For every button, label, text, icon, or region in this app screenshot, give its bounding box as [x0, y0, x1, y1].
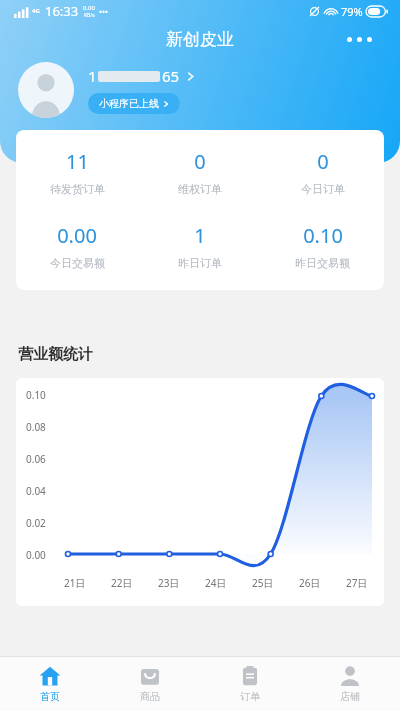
button[interactable]: 0 — [261, 148, 384, 196]
staticText: 今日订单 — [301, 182, 345, 196]
staticText: 0 — [317, 148, 329, 175]
staticText: 27日 — [346, 576, 368, 590]
staticText: 0.00 — [83, 4, 95, 12]
staticText: 4G — [32, 7, 40, 15]
button[interactable]: 0 — [138, 148, 261, 196]
staticText: 0 — [194, 148, 206, 175]
button[interactable]: 首页 — [0, 657, 100, 711]
button[interactable]: 1 — [138, 222, 261, 270]
staticText: 店铺 — [340, 690, 360, 703]
staticText: 新创皮业 — [166, 29, 234, 50]
button[interactable]: 11 — [16, 148, 138, 196]
button[interactable]: 0.00 — [16, 222, 138, 270]
staticText: 21日 — [64, 576, 86, 590]
staticText: 今日交易额 — [50, 256, 105, 270]
staticText: 昨日订单 — [178, 256, 222, 270]
staticText: 订单 — [240, 690, 260, 703]
staticText: 22日 — [111, 576, 133, 590]
staticText: 25日 — [252, 576, 274, 590]
staticText: 23日 — [158, 576, 180, 590]
staticText: KB/s — [84, 12, 95, 19]
button[interactable]: Profile avatar — [18, 62, 74, 118]
staticText: 16:33 — [45, 2, 79, 20]
staticText: 昨日交易额 — [295, 256, 350, 270]
staticText: 11 — [66, 148, 89, 175]
staticText: 26日 — [299, 576, 321, 590]
staticText: 维权订单 — [178, 182, 222, 196]
button[interactable]: 小程序已上线 — [88, 93, 180, 114]
button[interactable]: 订单 — [200, 657, 300, 711]
button[interactable]: More options — [341, 31, 378, 48]
staticText: 1 — [194, 222, 206, 249]
staticText: 79% — [341, 4, 363, 19]
staticText: 0.10 — [26, 388, 46, 402]
staticText: 待发货订单 — [50, 182, 105, 196]
staticText: ••• — [99, 6, 109, 17]
staticText: 0.00 — [26, 548, 46, 562]
staticText: 0.08 — [26, 420, 46, 434]
staticText: 0.06 — [26, 452, 46, 466]
staticText: 0.00 — [57, 222, 97, 249]
staticText: 0.10 — [303, 222, 343, 249]
staticText: 小程序已上线 — [99, 97, 159, 110]
staticText: 商品 — [140, 690, 160, 703]
button[interactable]: 1 — [88, 66, 195, 86]
staticText: 0.04 — [26, 484, 46, 498]
button[interactable]: 0.10 — [261, 222, 384, 270]
button[interactable]: 商品 — [100, 657, 200, 711]
staticText: 首页 — [40, 690, 60, 703]
staticText: 0.02 — [26, 516, 46, 530]
staticText: 营业额统计 — [18, 345, 93, 364]
staticText: 1 — [88, 66, 97, 86]
staticText: 24日 — [205, 576, 227, 590]
button[interactable]: 店铺 — [300, 657, 400, 711]
staticText: 65 — [162, 66, 180, 86]
